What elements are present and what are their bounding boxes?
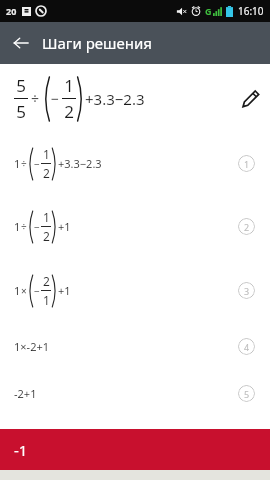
button[interactable]: Edit expression (230, 78, 270, 118)
button[interactable]: 1 (0, 194, 270, 258)
staticText: 3 (244, 285, 250, 297)
staticText: +3.3−2.3 (58, 156, 102, 171)
staticText: +1 (58, 283, 71, 298)
staticText: 1×-2+1 (14, 339, 50, 354)
staticText: 1 (43, 292, 50, 308)
button[interactable]: 1 (0, 258, 270, 322)
staticText: 5 (16, 100, 26, 123)
staticText: 5 (16, 74, 26, 97)
staticText: 20 (6, 5, 17, 17)
staticText: 2 (43, 228, 50, 244)
button[interactable]: 1×-2+1 (0, 322, 270, 370)
button[interactable]: 1 (0, 132, 270, 194)
staticText: − (34, 284, 40, 298)
staticText: ÷ (31, 89, 40, 108)
staticText: 1 (14, 219, 21, 234)
button[interactable]: 2 (238, 218, 255, 235)
staticText: 2 (43, 273, 50, 289)
button[interactable]: 5 (238, 385, 255, 402)
staticText: +3.3−2.3 (85, 89, 145, 109)
staticText: Шаги решения (42, 33, 152, 53)
button[interactable]: 1 (238, 155, 255, 172)
button[interactable]: 4 (238, 338, 255, 355)
staticText: G (205, 5, 212, 17)
staticText: × (21, 284, 27, 298)
staticText: 4 (244, 341, 250, 353)
staticText: 2 (64, 100, 74, 123)
staticText: ÷ (21, 157, 27, 171)
staticText: 1 (43, 209, 50, 225)
staticText: 5 (244, 388, 250, 400)
staticText: ÷ (21, 220, 27, 234)
button[interactable]: -1 (0, 429, 270, 470)
button[interactable]: Back (0, 22, 42, 64)
staticText: 2 (244, 221, 250, 233)
staticText: 1 (14, 283, 21, 298)
staticText: 2 (43, 165, 50, 181)
button[interactable]: 3 (238, 282, 255, 299)
button[interactable]: -2+1 (0, 370, 270, 416)
staticText: 1 (14, 156, 21, 171)
staticText: -2+1 (14, 386, 37, 401)
staticText: − (51, 89, 60, 108)
staticText: − (34, 220, 40, 234)
staticText: 1 (43, 146, 50, 162)
staticText: +1 (58, 219, 71, 234)
staticText: 16:10 (238, 4, 264, 18)
staticText: -1 (14, 440, 28, 460)
staticText: − (34, 157, 40, 171)
staticText: 1 (244, 158, 250, 170)
staticText: 1 (64, 74, 74, 97)
